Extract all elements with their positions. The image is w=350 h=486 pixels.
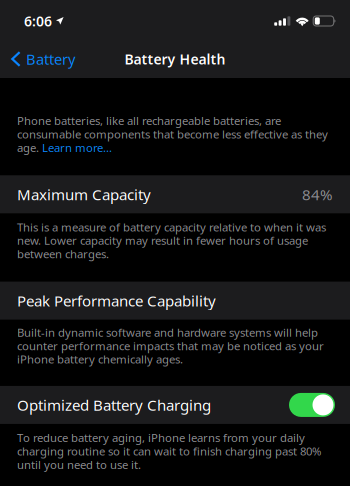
staticText: 84% bbox=[302, 184, 333, 204]
staticText: Maximum Capacity bbox=[17, 184, 151, 204]
staticText: To reduce battery aging, iPhone learns f… bbox=[17, 430, 321, 472]
staticText: Peak Performance Capability bbox=[17, 290, 216, 311]
staticText: Built-in dynamic software and hardware s… bbox=[17, 325, 324, 367]
staticText: Battery Health bbox=[124, 49, 225, 69]
staticText: 6:06 bbox=[24, 11, 52, 31]
staticText: This is a measure of battery capacity re… bbox=[17, 219, 326, 262]
button[interactable]: Peak Performance Capability bbox=[0, 282, 350, 320]
staticText: Phone batteries, like all rechargeable b… bbox=[17, 113, 328, 155]
button[interactable]: Back to Battery bbox=[0, 42, 85, 76]
button[interactable]: Optimized Battery Charging bbox=[0, 386, 350, 424]
staticText: Optimized Battery Charging bbox=[17, 395, 211, 415]
button[interactable]: Maximum Capacity bbox=[0, 175, 350, 213]
staticText: Battery bbox=[26, 49, 75, 69]
